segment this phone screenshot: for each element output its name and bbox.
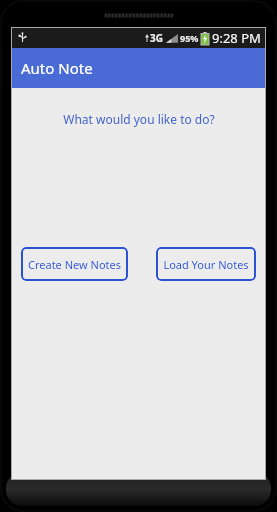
staticText: 9:28 PM: [212, 29, 261, 47]
staticText: Auto Note: [21, 58, 93, 78]
staticText: What would you like to do?: [63, 111, 215, 127]
button[interactable]: Load Your Notes: [156, 247, 256, 281]
staticText: 95%: [180, 32, 199, 44]
staticText: Load Your Notes: [163, 257, 249, 272]
button[interactable]: Create New Notes: [21, 247, 128, 281]
staticText: Create New Notes: [28, 257, 121, 272]
staticText: 3G: [150, 31, 163, 45]
